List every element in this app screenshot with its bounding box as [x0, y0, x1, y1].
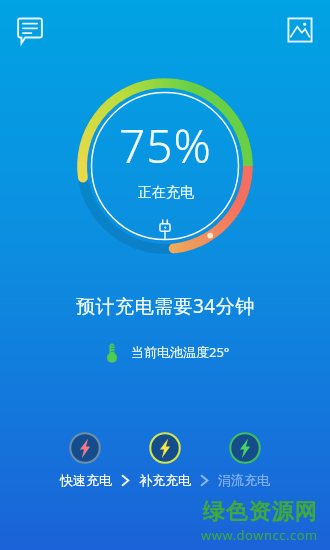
button[interactable]: Wallpaper	[283, 13, 317, 47]
staticText: 正在充电	[138, 184, 194, 202]
button[interactable]: 涓流充电	[218, 472, 270, 488]
staticText: 快速充电	[60, 472, 112, 488]
staticText: www.downcc.com	[201, 526, 318, 544]
button[interactable]: Trickle charge	[229, 432, 261, 464]
staticText: 涓流充电	[218, 472, 270, 488]
staticText: 75%	[119, 114, 212, 177]
staticText: 预计充电需要34分钟	[76, 293, 255, 319]
button[interactable]: Fast charge	[69, 432, 101, 464]
staticText: 补充充电	[139, 472, 191, 488]
button[interactable]: 补充充电	[139, 472, 191, 488]
button[interactable]: Feedback	[13, 13, 47, 47]
staticText: 绿色资源网	[202, 498, 317, 526]
button[interactable]: 快速充电	[60, 472, 112, 488]
button[interactable]: Top-up charge	[149, 432, 181, 464]
staticText: 当前电池温度25°	[131, 343, 230, 361]
